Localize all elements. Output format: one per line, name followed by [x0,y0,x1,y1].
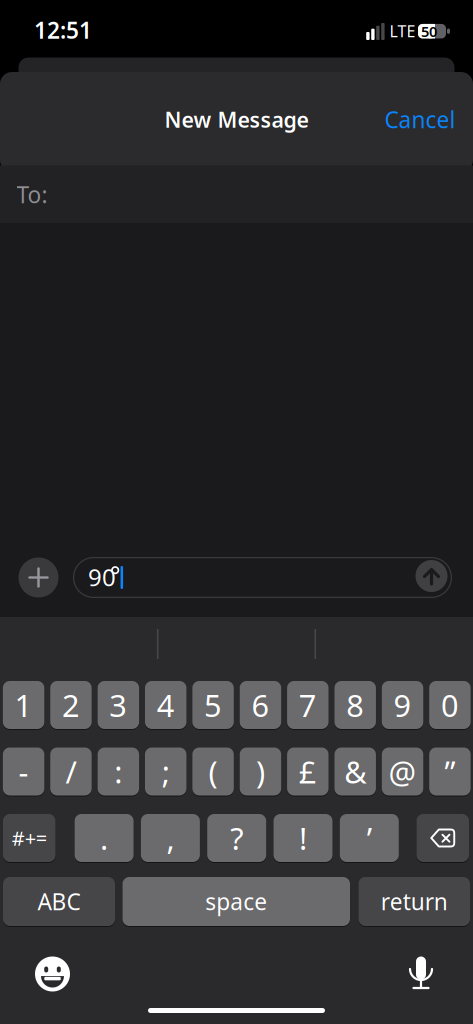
button[interactable]: 6 [240,681,281,729]
button[interactable]: ? [207,814,266,862]
button[interactable]: 7 [287,681,329,729]
button[interactable]: 1 [3,681,44,729]
button[interactable]: Dictate [408,956,434,990]
staticText: return [381,886,448,916]
staticText: New Message [164,105,308,134]
staticText: ABC [37,886,80,916]
staticText: ) [256,751,265,792]
button[interactable]: 0 [429,681,471,729]
button[interactable]: 9 [382,681,423,729]
button[interactable]: return [358,877,470,926]
staticText: LTE [389,20,415,42]
button[interactable]: ) [240,747,281,795]
staticText: 3 [109,685,127,725]
button[interactable]: #+= [3,814,55,862]
button[interactable]: 4 [145,681,186,729]
button[interactable]: £ [287,747,329,795]
staticText: 5 [204,685,222,725]
staticText: ! [299,818,307,858]
button[interactable]: ( [192,747,234,795]
button[interactable]: ! [273,814,332,862]
staticText: : [114,751,122,792]
button[interactable]: Cancel [384,104,455,134]
staticText: ” [444,751,455,792]
button[interactable]: Apps [18,557,58,597]
button[interactable]: . [75,814,134,862]
staticText: 1 [15,685,33,725]
button[interactable]: & [334,747,376,795]
button[interactable]: Delete [416,814,469,862]
button[interactable]: 8 [334,681,376,729]
staticText: - [19,751,29,792]
staticText: To: [16,179,47,209]
staticText: ( [209,751,218,792]
staticText: 90 [88,561,116,593]
staticText: , [166,818,174,858]
staticText: . [100,818,108,858]
button[interactable]: / [50,747,92,795]
staticText: #+= [12,825,47,851]
staticText: ; [162,751,170,792]
staticText: £ [299,751,317,792]
button[interactable]: @ [382,747,423,795]
button[interactable]: Emoji [35,956,70,991]
button[interactable]: : [98,747,139,795]
button[interactable]: Send [415,560,447,592]
staticText: 7 [299,685,317,725]
button[interactable]: 2 [50,681,92,729]
staticText: 50 [421,21,437,41]
staticText: space [205,886,267,916]
staticText: ? [230,818,243,858]
staticText: 2 [62,685,80,725]
button[interactable]: ’ [340,814,399,862]
button[interactable]: - [3,747,44,795]
staticText: 4 [157,685,175,725]
button[interactable]: ” [429,747,471,795]
staticText: / [65,751,76,792]
button[interactable]: ; [145,747,186,795]
button[interactable]: , [141,814,200,862]
staticText: 8 [346,685,364,725]
button[interactable]: space [122,877,350,926]
staticText: 0 [441,685,459,725]
button[interactable]: 5 [192,681,234,729]
button[interactable]: ABC [3,877,115,926]
staticText: @ [389,751,417,792]
staticText: 6 [251,685,269,725]
staticText: & [344,751,366,792]
staticText: Cancel [384,104,455,134]
staticText: 12:51 [34,15,92,45]
button[interactable]: 3 [98,681,139,729]
staticText: 9 [394,685,412,725]
staticText: ’ [367,818,372,858]
